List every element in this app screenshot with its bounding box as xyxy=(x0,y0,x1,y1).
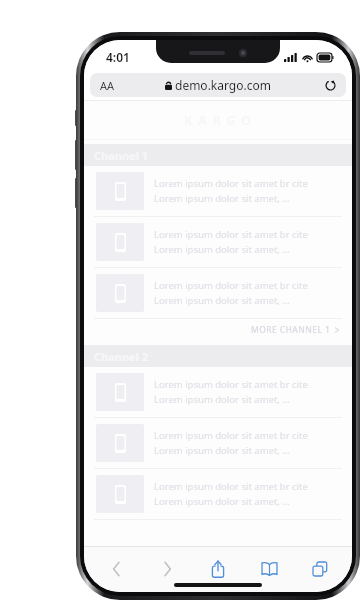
staticText: Lorem ipsum dolor sit amet, … xyxy=(154,444,290,457)
staticText: MORE CHANNEL 1 xyxy=(251,324,331,336)
staticText: demo.kargo.com xyxy=(175,77,271,93)
staticText: AA xyxy=(100,78,115,93)
button[interactable]: Lorem ipsum dolor sit amet br cite xyxy=(84,217,352,268)
staticText: Lorem ipsum dolor sit amet br cite xyxy=(154,480,308,493)
staticText: Channel 1 xyxy=(94,148,149,163)
button[interactable]: AA xyxy=(90,73,346,97)
button[interactable]: MORE CHANNEL 1 xyxy=(84,319,352,341)
staticText: Lorem ipsum dolor sit amet br cite xyxy=(154,378,308,391)
staticText: Channel 2 xyxy=(94,349,149,364)
button[interactable]: Lorem ipsum dolor sit amet br cite xyxy=(84,166,352,217)
button[interactable]: Lorem ipsum dolor sit amet br cite xyxy=(84,268,352,319)
staticText: Lorem ipsum dolor sit amet br cite xyxy=(154,177,308,190)
staticText: Lorem ipsum dolor sit amet, … xyxy=(154,192,290,205)
button[interactable]: Lorem ipsum dolor sit amet br cite xyxy=(84,469,352,520)
staticText: Lorem ipsum dolor sit amet, … xyxy=(154,393,290,406)
button[interactable]: Reload xyxy=(322,77,338,93)
button[interactable]: Lorem ipsum dolor sit amet br cite xyxy=(84,418,352,469)
button[interactable]: Bookmarks xyxy=(250,550,288,588)
button[interactable]: Tabs xyxy=(301,550,339,588)
staticText: Lorem ipsum dolor sit amet br cite xyxy=(154,429,308,442)
button[interactable]: Forward xyxy=(148,550,186,588)
staticText: Lorem ipsum dolor sit amet, … xyxy=(154,294,290,307)
button[interactable]: Lorem ipsum dolor sit amet br cite xyxy=(84,367,352,418)
staticText: 4:01 xyxy=(106,49,130,65)
staticText: Lorem ipsum dolor sit amet, … xyxy=(154,495,290,508)
staticText: Lorem ipsum dolor sit amet, … xyxy=(154,243,290,256)
staticText: Lorem ipsum dolor sit amet br cite xyxy=(154,228,308,241)
staticText: Lorem ipsum dolor sit amet br cite xyxy=(154,279,308,292)
button[interactable]: Share xyxy=(199,550,237,588)
button[interactable]: Back xyxy=(97,550,135,588)
